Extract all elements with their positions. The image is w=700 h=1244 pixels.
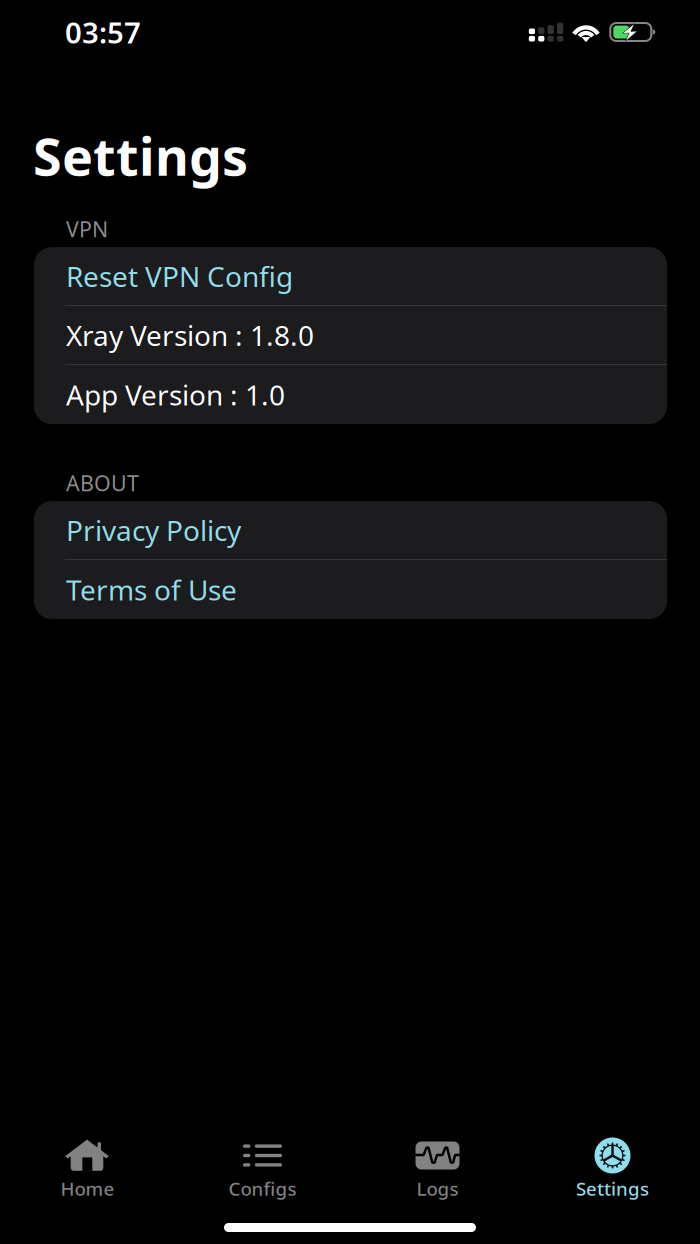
- staticText: VPN: [66, 215, 108, 243]
- staticText: Configs: [228, 1176, 296, 1201]
- staticText: App Version : 1.0: [66, 376, 285, 413]
- staticText: 03:57: [65, 12, 141, 51]
- button[interactable]: Reset VPN Config: [34, 247, 667, 306]
- staticText: Reset VPN Config: [66, 257, 293, 295]
- button[interactable]: Xray Version : 1.8.0: [34, 306, 667, 365]
- staticText: Logs: [416, 1176, 458, 1201]
- button[interactable]: Terms of Use: [34, 560, 667, 619]
- button[interactable]: Privacy Policy: [34, 501, 667, 560]
- staticText: Settings: [576, 1176, 649, 1201]
- button[interactable]: Configs: [175, 1139, 350, 1197]
- button[interactable]: Logs: [350, 1139, 525, 1197]
- staticText: Home: [60, 1176, 114, 1201]
- staticText: Xray Version : 1.8.0: [66, 316, 314, 354]
- staticText: Terms of Use: [66, 571, 237, 608]
- button[interactable]: App Version : 1.0: [34, 365, 667, 424]
- button[interactable]: Settings: [525, 1139, 700, 1197]
- button[interactable]: Home: [0, 1139, 175, 1197]
- staticText: ABOUT: [66, 469, 139, 497]
- staticText: Settings: [33, 121, 248, 190]
- staticText: Privacy Policy: [66, 511, 241, 549]
